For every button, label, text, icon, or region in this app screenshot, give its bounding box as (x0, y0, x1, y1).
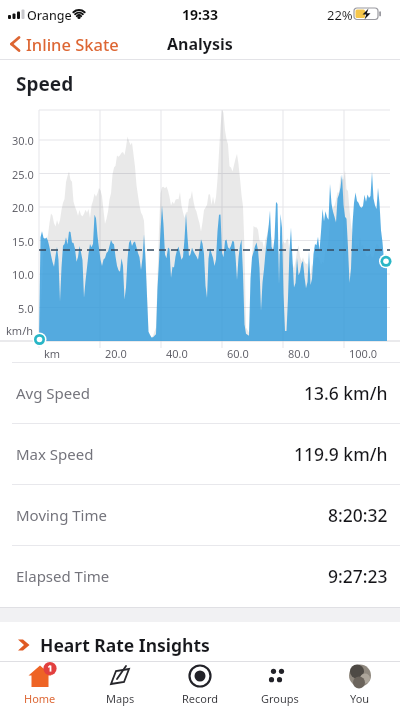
staticText: 119.9 km/h (294, 442, 388, 466)
button[interactable]: Elapsed Time (0, 545, 400, 606)
staticText: Groups (261, 691, 299, 706)
staticText: km (44, 346, 61, 361)
staticText: Record (182, 691, 219, 706)
staticText: 25.0 (12, 167, 34, 182)
staticText: 15.0 (12, 234, 34, 249)
staticText: Inline Skate (26, 33, 119, 55)
button[interactable]: Inline Skate (0, 28, 119, 60)
staticText: Home (24, 691, 56, 706)
button[interactable]: Max Speed (0, 423, 400, 484)
staticText: 9:27:23 (328, 564, 388, 588)
staticText: 80.0 (288, 346, 310, 361)
staticText: 60.0 (227, 346, 249, 361)
staticText: Elapsed Time (16, 566, 110, 586)
button[interactable]: You (320, 662, 400, 711)
staticText: Max Speed (16, 444, 94, 464)
staticText: 13.6 km/h (304, 381, 388, 405)
staticText: Analysis (167, 33, 233, 55)
staticText: 40.0 (166, 346, 188, 361)
staticText: You (350, 691, 370, 706)
staticText: Moving Time (16, 505, 107, 525)
staticText: 10.0 (12, 267, 34, 282)
button[interactable]: Record (160, 662, 240, 711)
staticText: 5.0 (18, 301, 34, 316)
staticText: Maps (106, 691, 135, 706)
staticText: 100.0 (349, 346, 378, 361)
staticText: Speed (16, 71, 74, 97)
staticText: Orange (27, 7, 72, 24)
staticText: 22% (327, 6, 353, 24)
button[interactable]: Home (0, 662, 80, 711)
staticText: Avg Speed (16, 383, 90, 403)
button[interactable]: Moving Time (0, 484, 400, 545)
staticText: Heart Rate Insights (40, 633, 210, 657)
button[interactable]: Avg Speed (0, 362, 400, 423)
staticText: 20.0 (12, 200, 34, 215)
staticText: 8:20:32 (328, 503, 388, 527)
staticText: km/h (6, 323, 34, 338)
staticText: 19:33 (182, 5, 218, 24)
button[interactable]: Heart Rate Insights (0, 622, 400, 661)
staticText: 20.0 (105, 346, 127, 361)
button[interactable]: Groups (240, 662, 320, 711)
staticText: 30.0 (12, 133, 34, 148)
button[interactable]: Maps (80, 662, 160, 711)
